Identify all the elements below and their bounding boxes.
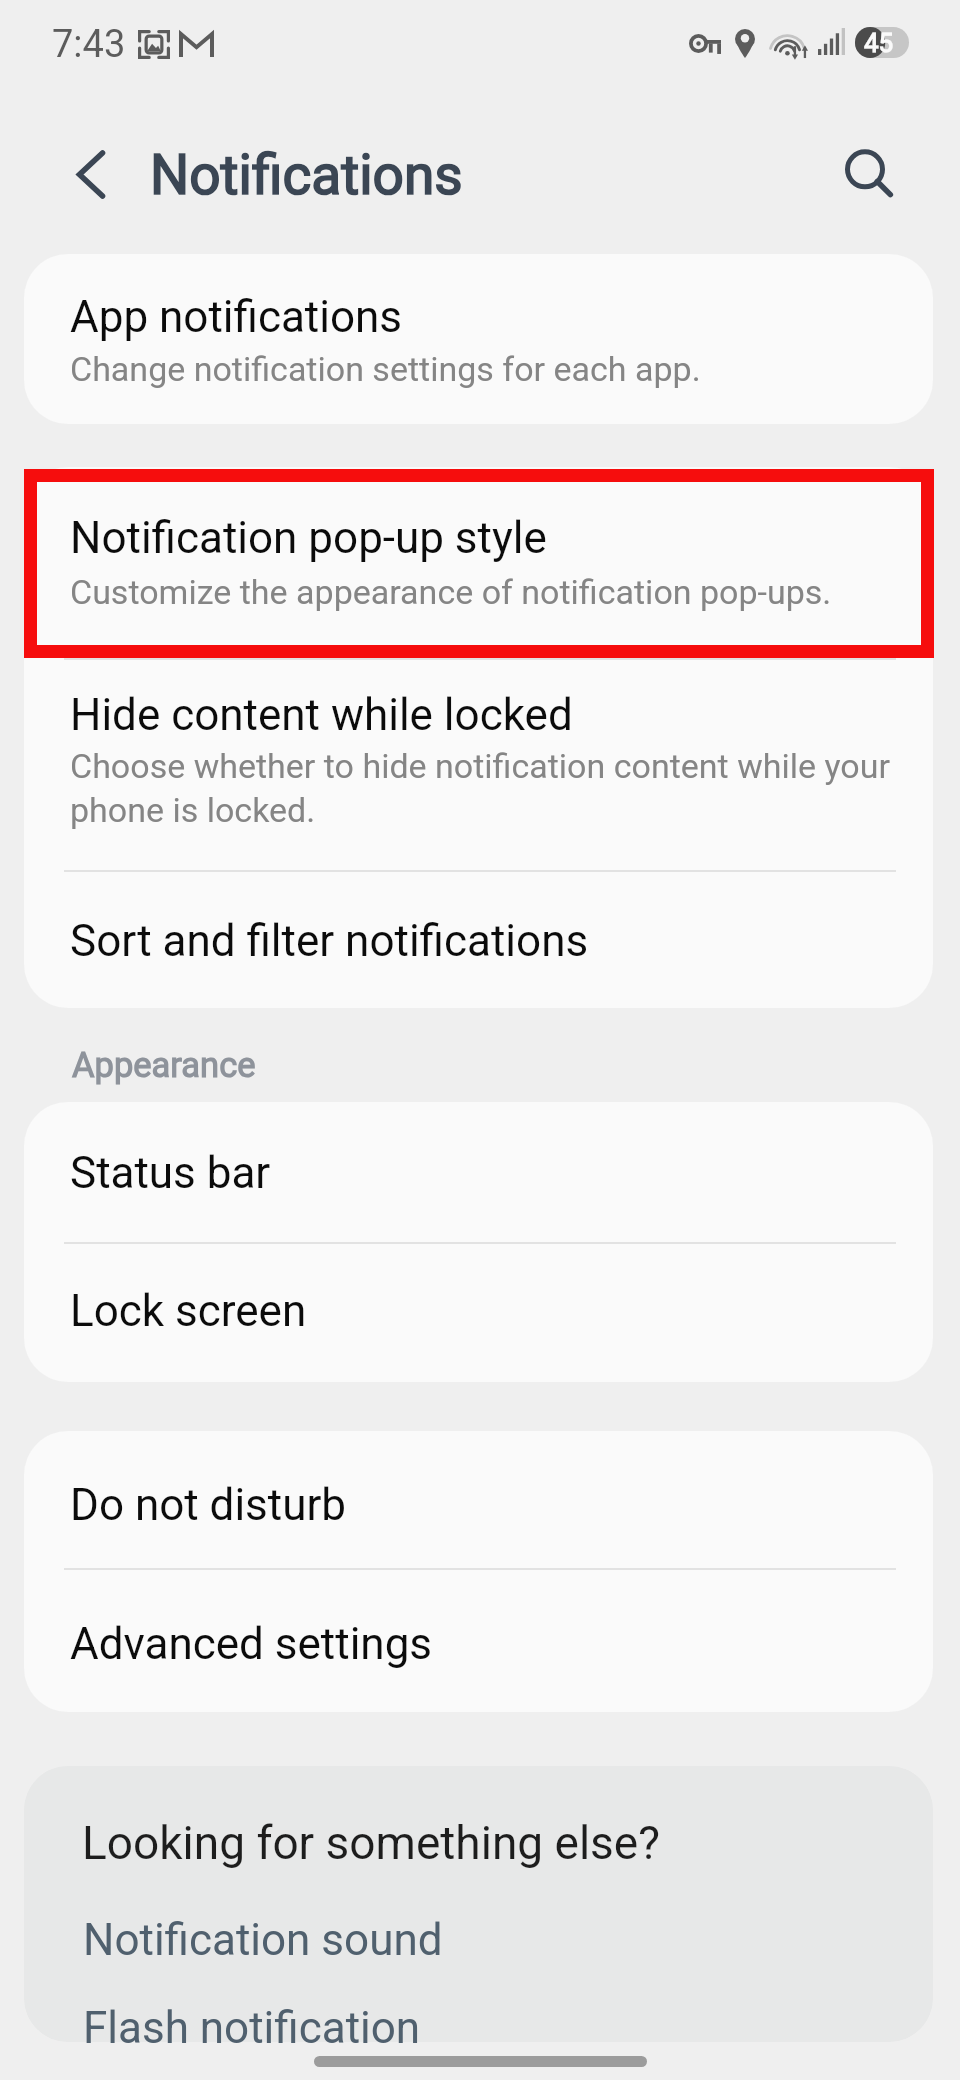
staticText: Hide content while locked bbox=[70, 689, 573, 740]
button[interactable]: Advanced settings bbox=[24, 1570, 933, 1712]
staticText: App notifications bbox=[70, 291, 403, 342]
staticText: Advanced settings bbox=[70, 1618, 433, 1669]
button[interactable]: App notifications bbox=[24, 254, 933, 424]
staticText: Flash notification bbox=[83, 2002, 421, 2053]
staticText: Notification pop-up style bbox=[70, 512, 547, 563]
button[interactable]: Sort and filter notifications bbox=[24, 872, 933, 1008]
button[interactable]: Do not disturb bbox=[24, 1431, 933, 1568]
staticText: Do not disturb bbox=[70, 1479, 347, 1530]
button[interactable]: Lock screen bbox=[24, 1243, 933, 1382]
button[interactable]: Search bbox=[829, 134, 901, 206]
staticText: phone is locked. bbox=[70, 791, 316, 831]
button[interactable]: Notification sound bbox=[50, 1906, 898, 1982]
staticText: Sort and filter notifications bbox=[70, 915, 589, 966]
button[interactable]: Status bar bbox=[24, 1102, 933, 1242]
staticText: Notification sound bbox=[83, 1914, 443, 1965]
staticText: Choose whether to hide notification cont… bbox=[70, 747, 890, 787]
button[interactable]: Back bbox=[54, 140, 126, 212]
staticText: Change notification settings for each ap… bbox=[70, 350, 701, 390]
staticText: 7:43 bbox=[52, 22, 126, 66]
staticText: Lock screen bbox=[70, 1285, 307, 1336]
button[interactable]: Hide content while locked bbox=[24, 660, 933, 870]
staticText: Status bar bbox=[70, 1147, 271, 1198]
staticText: 45 bbox=[864, 28, 894, 58]
staticText: Appearance bbox=[72, 1045, 256, 1085]
staticText: Notifications bbox=[150, 143, 463, 207]
button[interactable]: Notification pop-up style bbox=[24, 467, 933, 658]
staticText: Customize the appearance of notification… bbox=[70, 573, 832, 613]
button[interactable]: Flash notification bbox=[50, 1994, 898, 2070]
staticText: Looking for something else? bbox=[82, 1816, 660, 1870]
